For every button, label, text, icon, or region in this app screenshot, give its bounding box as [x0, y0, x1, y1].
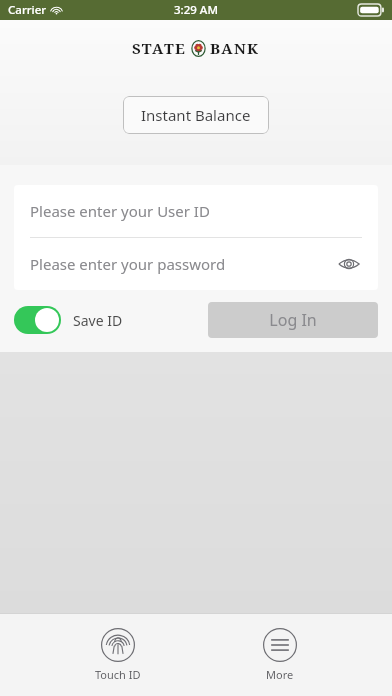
- button[interactable]: Instant Balance: [123, 96, 269, 134]
- staticText: Please enter your password: [30, 254, 226, 274]
- button[interactable]: Log In: [208, 302, 378, 338]
- other: More: [263, 628, 297, 662]
- button[interactable]: Please enter your User ID: [14, 185, 378, 237]
- button[interactable]: More: [237, 624, 323, 686]
- staticText: Instant Balance: [141, 105, 251, 125]
- staticText: Please enter your User ID: [30, 201, 210, 221]
- staticText: Log In: [269, 309, 317, 331]
- staticText: Carrier: [8, 2, 47, 18]
- staticText: 3:29 AM: [174, 2, 218, 18]
- button[interactable]: Save ID: [14, 306, 123, 334]
- button[interactable]: Show password: [336, 251, 362, 277]
- button[interactable]: Please enter your password: [14, 238, 378, 290]
- staticText: Touch ID: [95, 667, 141, 682]
- staticText: BANK: [210, 38, 260, 58]
- staticText: Save ID: [73, 311, 123, 330]
- other: Touch ID: [101, 628, 135, 662]
- staticText: STATE: [132, 38, 187, 58]
- button[interactable]: Touch ID: [69, 624, 167, 686]
- staticText: More: [266, 667, 294, 682]
